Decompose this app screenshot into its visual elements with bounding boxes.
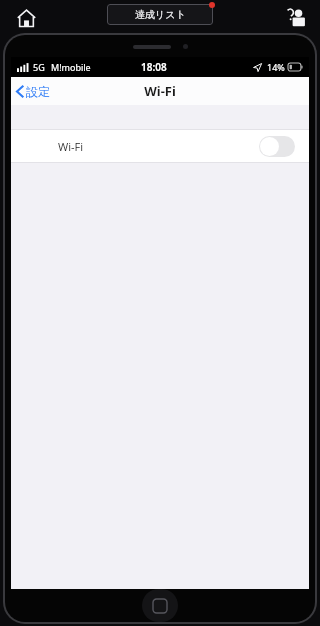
staticText: 18:08 xyxy=(141,60,167,74)
button[interactable]: Home button xyxy=(142,589,178,622)
staticText: 14% xyxy=(267,61,285,73)
staticText: Wi-Fi xyxy=(144,82,176,100)
button[interactable]: Home xyxy=(14,6,38,30)
button[interactable]: 達成リスト xyxy=(107,4,213,25)
button[interactable]: 設定 xyxy=(16,84,50,99)
staticText: M!mobile xyxy=(51,61,91,73)
button[interactable]: Wi-Fi toggle xyxy=(259,136,295,157)
staticText: Wi-Fi xyxy=(58,139,84,154)
staticText: 設定 xyxy=(26,84,50,99)
staticText: 達成リスト xyxy=(135,8,186,21)
button[interactable]: Help xyxy=(284,4,310,30)
button[interactable]: Wi-Fi xyxy=(11,130,309,162)
staticText: 5G xyxy=(33,61,45,73)
